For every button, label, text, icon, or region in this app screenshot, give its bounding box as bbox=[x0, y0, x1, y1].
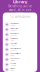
staticText: Shared with You bbox=[10, 53, 21, 54]
staticText: Favorites bbox=[10, 43, 17, 44]
button[interactable]: Reading List bbox=[3, 22, 37, 27]
staticText: Library bbox=[13, 0, 27, 4]
staticText: 18 tracks bbox=[10, 50, 17, 51]
button[interactable]: Downloads bbox=[3, 37, 37, 42]
staticText: 5 items bbox=[10, 55, 14, 56]
button[interactable]: Bookmarks bbox=[3, 32, 37, 37]
button[interactable]: Purchased bbox=[3, 57, 37, 62]
staticText: 31 items bbox=[10, 45, 15, 46]
staticText: Downloads bbox=[10, 38, 18, 39]
staticText: 12 collections bbox=[10, 15, 30, 18]
button[interactable]: Favorites bbox=[3, 42, 37, 47]
staticText: Recently Played bbox=[10, 48, 21, 49]
staticText: 63 items bbox=[10, 60, 15, 61]
staticText: 102 items bbox=[10, 65, 16, 66]
button[interactable]: Watch Later bbox=[3, 27, 37, 32]
button[interactable]: Recently Played bbox=[3, 47, 37, 52]
staticText: Purchased bbox=[10, 58, 19, 59]
staticText: 48 pages bbox=[10, 35, 17, 36]
staticText: Reading List bbox=[10, 23, 18, 24]
staticText: 3 items bbox=[10, 70, 14, 71]
button[interactable]: Shared with You bbox=[3, 52, 37, 57]
staticText: Hidden bbox=[10, 68, 15, 69]
staticText: 24 items bbox=[10, 25, 15, 26]
staticText: 7 files bbox=[10, 40, 14, 41]
button[interactable]: Archive bbox=[3, 62, 37, 67]
staticText: 12 videos bbox=[10, 30, 17, 31]
staticText: Archive bbox=[10, 63, 16, 64]
staticText: Bookmarks bbox=[10, 33, 19, 34]
staticText: Everything you've saved, all in one plac… bbox=[8, 4, 32, 15]
staticText: Watch Later bbox=[10, 28, 18, 29]
button[interactable]: Hidden bbox=[3, 67, 37, 72]
